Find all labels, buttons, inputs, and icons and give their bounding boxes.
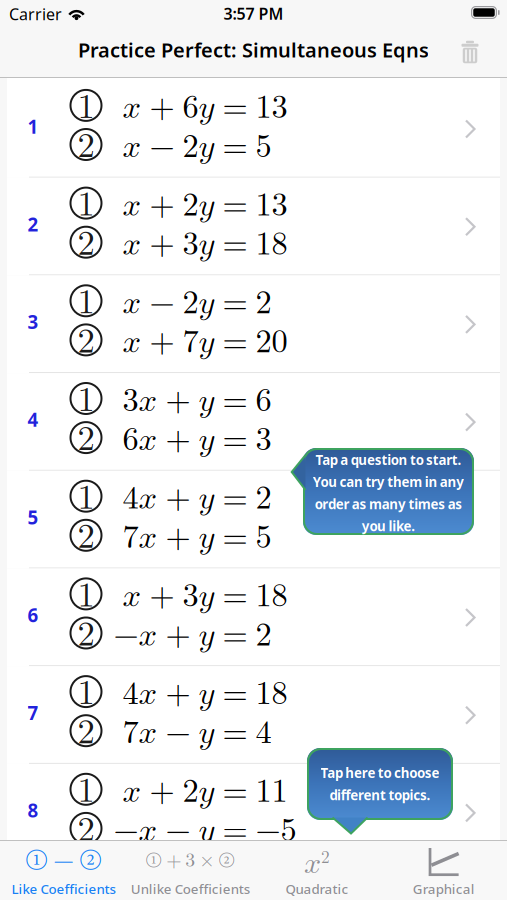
- button[interactable]: ① + 3 × ②: [127, 840, 254, 900]
- staticText: 4: [255, 717, 271, 749]
- staticText: 4: [27, 407, 38, 432]
- staticText: 1: [77, 274, 94, 323]
- staticText: 18: [255, 678, 287, 710]
- staticText: Quadratic: [285, 880, 348, 898]
- staticText: 7𝑥 + 𝑦: [122, 522, 214, 554]
- staticText: 𝑥 + 6𝑦: [122, 92, 214, 124]
- staticText: 1: [77, 665, 94, 714]
- button[interactable]: 6: [7, 568, 500, 666]
- button[interactable]: 𝑥2: [253, 840, 380, 900]
- staticText: 3: [255, 424, 271, 456]
- staticText: 6: [27, 603, 38, 627]
- staticText: 18: [255, 228, 287, 261]
- staticText: 2: [77, 704, 94, 753]
- staticText: 𝑥 − 2𝑦: [122, 131, 214, 163]
- staticText: 7𝑥 − 𝑦: [122, 717, 214, 749]
- staticText: Carrier: [9, 3, 62, 25]
- staticText: =: [214, 92, 255, 124]
- staticText: =: [214, 385, 255, 417]
- staticText: Tap here to choose: [320, 764, 439, 782]
- staticText: 7: [27, 700, 38, 725]
- staticText: ① − ②: [25, 847, 102, 875]
- staticText: =: [214, 326, 255, 359]
- staticText: Unlike Coefficients: [131, 880, 250, 898]
- staticText: =: [214, 717, 255, 749]
- staticText: =: [214, 522, 255, 554]
- staticText: 1: [77, 372, 94, 421]
- button[interactable]: ① − ②: [0, 840, 127, 900]
- staticText: 5: [255, 522, 271, 554]
- staticText: 8: [27, 798, 38, 823]
- staticText: You can try them in any: [313, 473, 464, 491]
- staticText: 3: [27, 309, 38, 334]
- staticText: Like Coefficients: [11, 880, 115, 898]
- staticText: 𝑥 − 2𝑦: [122, 287, 214, 319]
- staticText: −𝑥 − 𝑦: [113, 815, 214, 847]
- button[interactable]: 1: [7, 80, 500, 178]
- staticText: 3𝑥 + 𝑦: [122, 385, 214, 417]
- staticText: =: [214, 189, 255, 222]
- staticText: 11: [255, 776, 287, 808]
- staticText: =: [214, 815, 255, 847]
- staticText: =: [214, 776, 255, 808]
- button[interactable]: 2: [7, 178, 500, 275]
- staticText: 2: [77, 313, 94, 362]
- staticText: 1: [77, 567, 94, 616]
- staticText: 1: [77, 176, 94, 226]
- staticText: 𝑥 + 3𝑦: [122, 580, 214, 613]
- staticText: =: [214, 131, 255, 163]
- staticText: 1: [77, 79, 94, 128]
- staticText: 3:57 PM: [223, 3, 283, 24]
- staticText: −5: [255, 815, 296, 847]
- staticText: 18: [255, 580, 287, 613]
- staticText: Tap a question to start.: [315, 451, 461, 469]
- staticText: 2: [77, 509, 94, 558]
- staticText: 2: [77, 118, 94, 167]
- staticText: 2: [77, 216, 94, 265]
- staticText: 1: [27, 114, 38, 139]
- button[interactable]: Graphical: [380, 840, 507, 900]
- staticText: 4𝑥 + 𝑦: [122, 482, 214, 515]
- staticText: order as many times as: [315, 495, 462, 513]
- staticText: 4𝑥 + 𝑦: [122, 678, 214, 710]
- staticText: 6: [255, 385, 271, 417]
- staticText: 𝑥 + 3𝑦: [122, 228, 214, 261]
- staticText: =: [214, 619, 255, 652]
- staticText: 13: [255, 189, 287, 222]
- staticText: 2: [255, 482, 271, 515]
- button[interactable]: 3: [7, 275, 500, 373]
- staticText: you like.: [362, 517, 415, 535]
- staticText: 2: [255, 619, 271, 652]
- staticText: =: [214, 228, 255, 261]
- staticText: 20: [255, 326, 287, 359]
- staticText: 𝑥 + 2𝑦: [122, 189, 214, 222]
- staticText: 1: [77, 763, 94, 812]
- staticText: 5: [27, 505, 38, 530]
- staticText: =: [214, 287, 255, 319]
- staticText: ① + 3 × ②: [145, 851, 235, 871]
- button[interactable]: 7: [7, 666, 500, 764]
- staticText: Practice Perfect: Simultaneous Eqns: [78, 36, 429, 63]
- button[interactable]: 5: [7, 471, 500, 568]
- staticText: 2: [255, 287, 271, 319]
- staticText: 𝑥 + 7𝑦: [122, 326, 214, 359]
- button[interactable]: Delete history: [452, 34, 488, 70]
- button[interactable]: 8: [7, 764, 500, 862]
- staticText: =: [214, 580, 255, 613]
- staticText: −𝑥 + 𝑦: [113, 619, 214, 652]
- staticText: Graphical: [413, 880, 475, 898]
- staticText: 𝑥2: [304, 844, 330, 878]
- staticText: =: [214, 424, 255, 456]
- staticText: 𝑥 + 2𝑦: [122, 776, 214, 808]
- staticText: =: [214, 482, 255, 515]
- staticText: =: [214, 678, 255, 710]
- staticText: 6𝑥 + 𝑦: [122, 424, 214, 456]
- staticText: 2: [77, 411, 94, 460]
- staticText: 2: [77, 802, 94, 851]
- staticText: different topics.: [329, 786, 431, 804]
- staticText: 1: [77, 470, 94, 519]
- button[interactable]: 4: [7, 373, 500, 471]
- staticText: 5: [255, 131, 271, 163]
- staticText: 13: [255, 92, 287, 124]
- staticText: 2: [77, 606, 94, 655]
